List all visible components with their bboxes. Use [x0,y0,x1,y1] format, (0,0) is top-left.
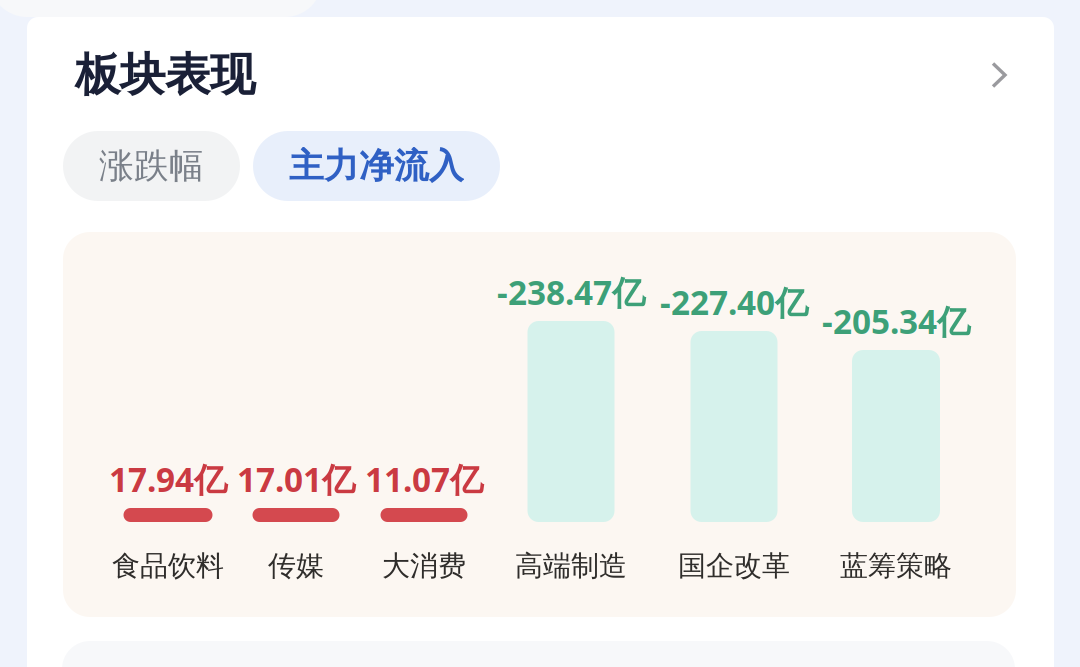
staticText: 大消费 [382,549,466,583]
staticText: 传媒 [268,549,324,583]
staticText: 蓝筹策略 [840,549,952,583]
staticText: 主力净流入 [289,145,464,187]
staticText: 板块表现 [75,47,255,103]
staticText: -227.40亿 [660,280,808,324]
staticText: 17.01亿 [237,457,355,501]
staticText: -238.47亿 [497,270,645,314]
staticText: 11.07亿 [365,457,483,501]
staticText: 涨跌幅 [99,145,204,187]
button[interactable]: 板块表现 [27,27,1054,123]
staticText: 食品饮料 [112,549,224,583]
staticText: -205.34亿 [822,299,970,343]
staticText: 国企改革 [678,549,790,583]
button[interactable]: 涨跌幅 [63,131,240,201]
staticText: 高端制造 [515,549,627,583]
staticText: 17.94亿 [109,457,227,501]
button[interactable]: 主力净流入 [253,131,500,201]
